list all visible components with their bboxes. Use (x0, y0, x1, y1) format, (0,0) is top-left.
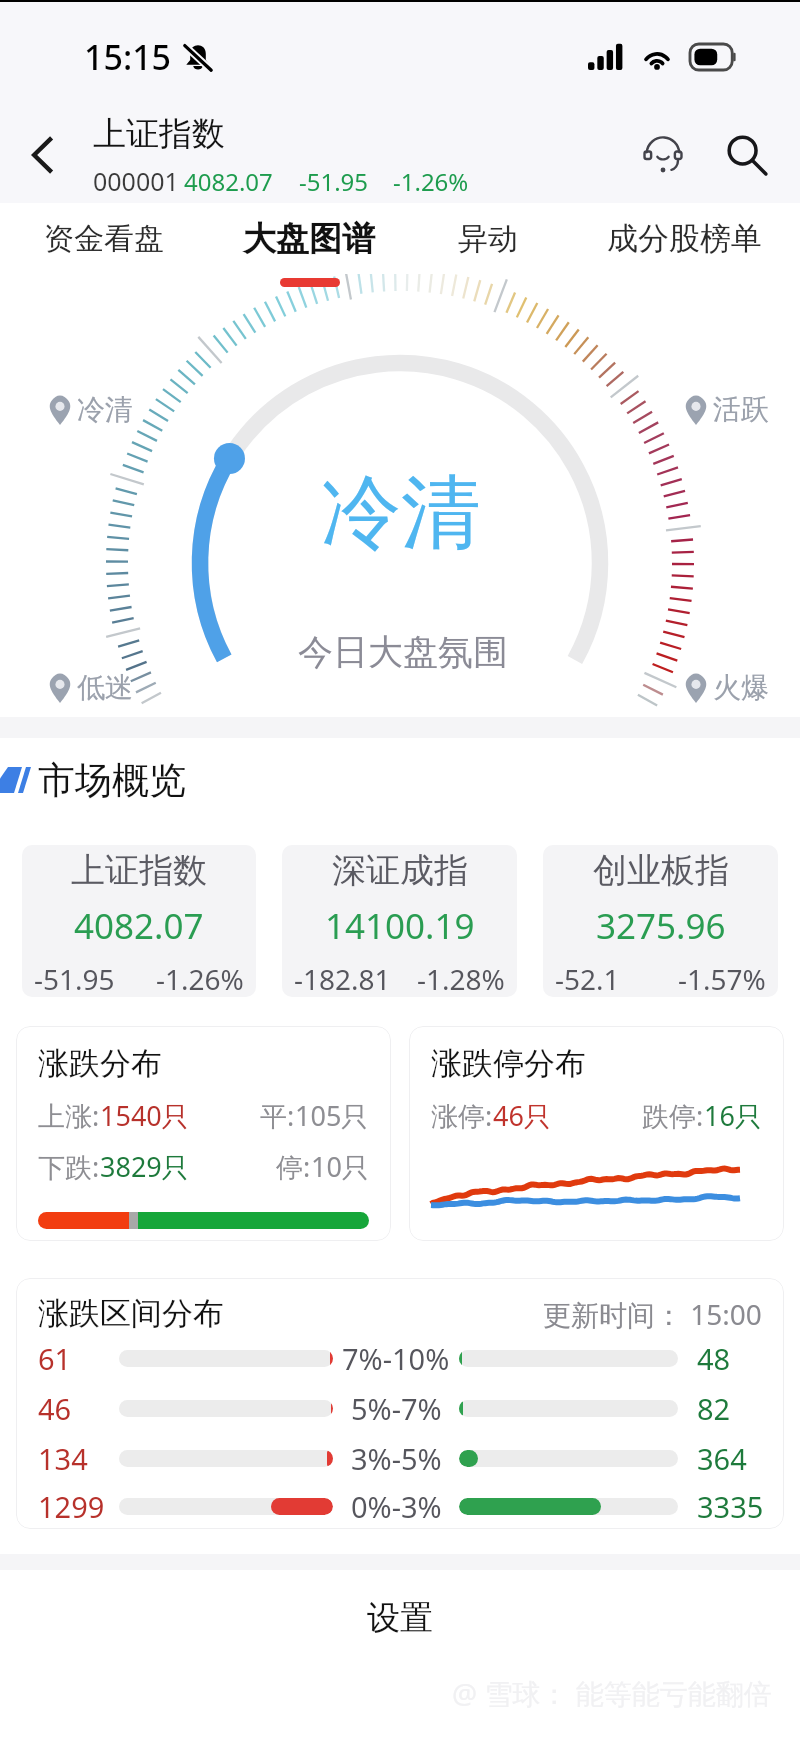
staticText: 涨跌停分布 (431, 1044, 586, 1083)
button[interactable]: Customer service (630, 122, 696, 188)
staticText: 5%-7% (351, 1389, 442, 1428)
staticText: 14100.19 (325, 902, 475, 950)
staticText: 364 (697, 1439, 747, 1478)
button[interactable]: 上证指数 (22, 845, 256, 997)
staticText: 冷清 (321, 463, 481, 564)
staticText: 16只 (704, 1097, 762, 1134)
staticText: 停: (276, 1148, 311, 1185)
button[interactable]: 大盘图谱 (208, 203, 410, 274)
staticText: 46只 (493, 1097, 551, 1134)
button[interactable]: Search (714, 122, 780, 188)
staticText: 火爆 (713, 670, 769, 705)
staticText: -1.57% (678, 960, 766, 997)
button[interactable]: 创业板指 (543, 845, 778, 997)
staticText: 设置 (367, 1597, 433, 1639)
button[interactable]: 涨跌停分布 (409, 1026, 784, 1241)
staticText: 活跃 (713, 392, 769, 427)
staticText: 上证指数 (71, 849, 207, 892)
staticText: -1.26% (393, 165, 469, 198)
staticText: 深证成指 (332, 849, 468, 892)
staticText: 更新时间： 15:00 (543, 1295, 762, 1333)
button[interactable]: 涨跌区间分布 (16, 1278, 784, 1529)
staticText: 资金看盘 (44, 220, 164, 258)
button[interactable]: Back (6, 117, 82, 193)
staticText: @ 雪球： 能等能亏能翻倍 (452, 1674, 772, 1712)
staticText: 创业板指 (593, 849, 729, 892)
staticText: -51.95 (34, 960, 115, 997)
staticText: 0%-3% (351, 1487, 442, 1526)
staticText: 15:15 (84, 34, 172, 80)
staticText: 3%-5% (351, 1439, 442, 1478)
staticText: 1540只 (100, 1097, 189, 1134)
button[interactable]: 深证成指 (282, 845, 517, 997)
staticText: 10只 (311, 1148, 369, 1185)
staticText: 成分股榜单 (607, 219, 762, 258)
staticText: 105只 (295, 1097, 369, 1134)
staticText: 低迷 (77, 670, 133, 705)
button[interactable]: 设置 (0, 1570, 800, 1665)
staticText: 今日大盘氛围 (298, 630, 508, 674)
staticText: 大盘图谱 (243, 218, 375, 260)
staticText: -51.95 (299, 165, 369, 198)
button[interactable]: 涨跌分布 (16, 1026, 391, 1241)
staticText: -52.1 (555, 960, 620, 997)
staticText: 4082.07 (74, 902, 204, 950)
staticText: 冷清 (77, 392, 133, 427)
staticText: 82 (697, 1389, 731, 1428)
staticText: 46 (38, 1389, 72, 1428)
staticText: -1.28% (417, 960, 505, 997)
staticText: 下跌: (38, 1148, 100, 1185)
staticText: -1.26% (156, 960, 244, 997)
button[interactable]: 资金看盘 (0, 203, 208, 274)
staticText: 涨停: (431, 1097, 493, 1134)
staticText: 3829只 (100, 1148, 189, 1185)
staticText: 上涨: (38, 1097, 100, 1134)
button[interactable]: 成分股榜单 (565, 203, 800, 274)
staticText: 异动 (458, 220, 518, 258)
staticText: -182.81 (294, 960, 391, 997)
button[interactable]: 异动 (410, 203, 565, 274)
staticText: 3335 (697, 1487, 764, 1526)
staticText: 涨跌区间分布 (38, 1294, 224, 1333)
staticText: 48 (697, 1339, 731, 1378)
staticText: 平: (260, 1097, 295, 1134)
staticText: 61 (38, 1339, 72, 1378)
staticText: 3275.96 (596, 902, 726, 950)
staticText: 000001 (93, 164, 179, 198)
staticText: 4082.07 (184, 165, 273, 198)
staticText: 7%-10% (342, 1339, 450, 1378)
staticText: 涨跌分布 (38, 1044, 162, 1083)
staticText: 上证指数 (93, 113, 225, 155)
staticText: 市场概览 (38, 757, 186, 804)
staticText: 134 (38, 1439, 88, 1478)
staticText: 跌停: (642, 1097, 704, 1134)
staticText: 1299 (38, 1487, 105, 1526)
